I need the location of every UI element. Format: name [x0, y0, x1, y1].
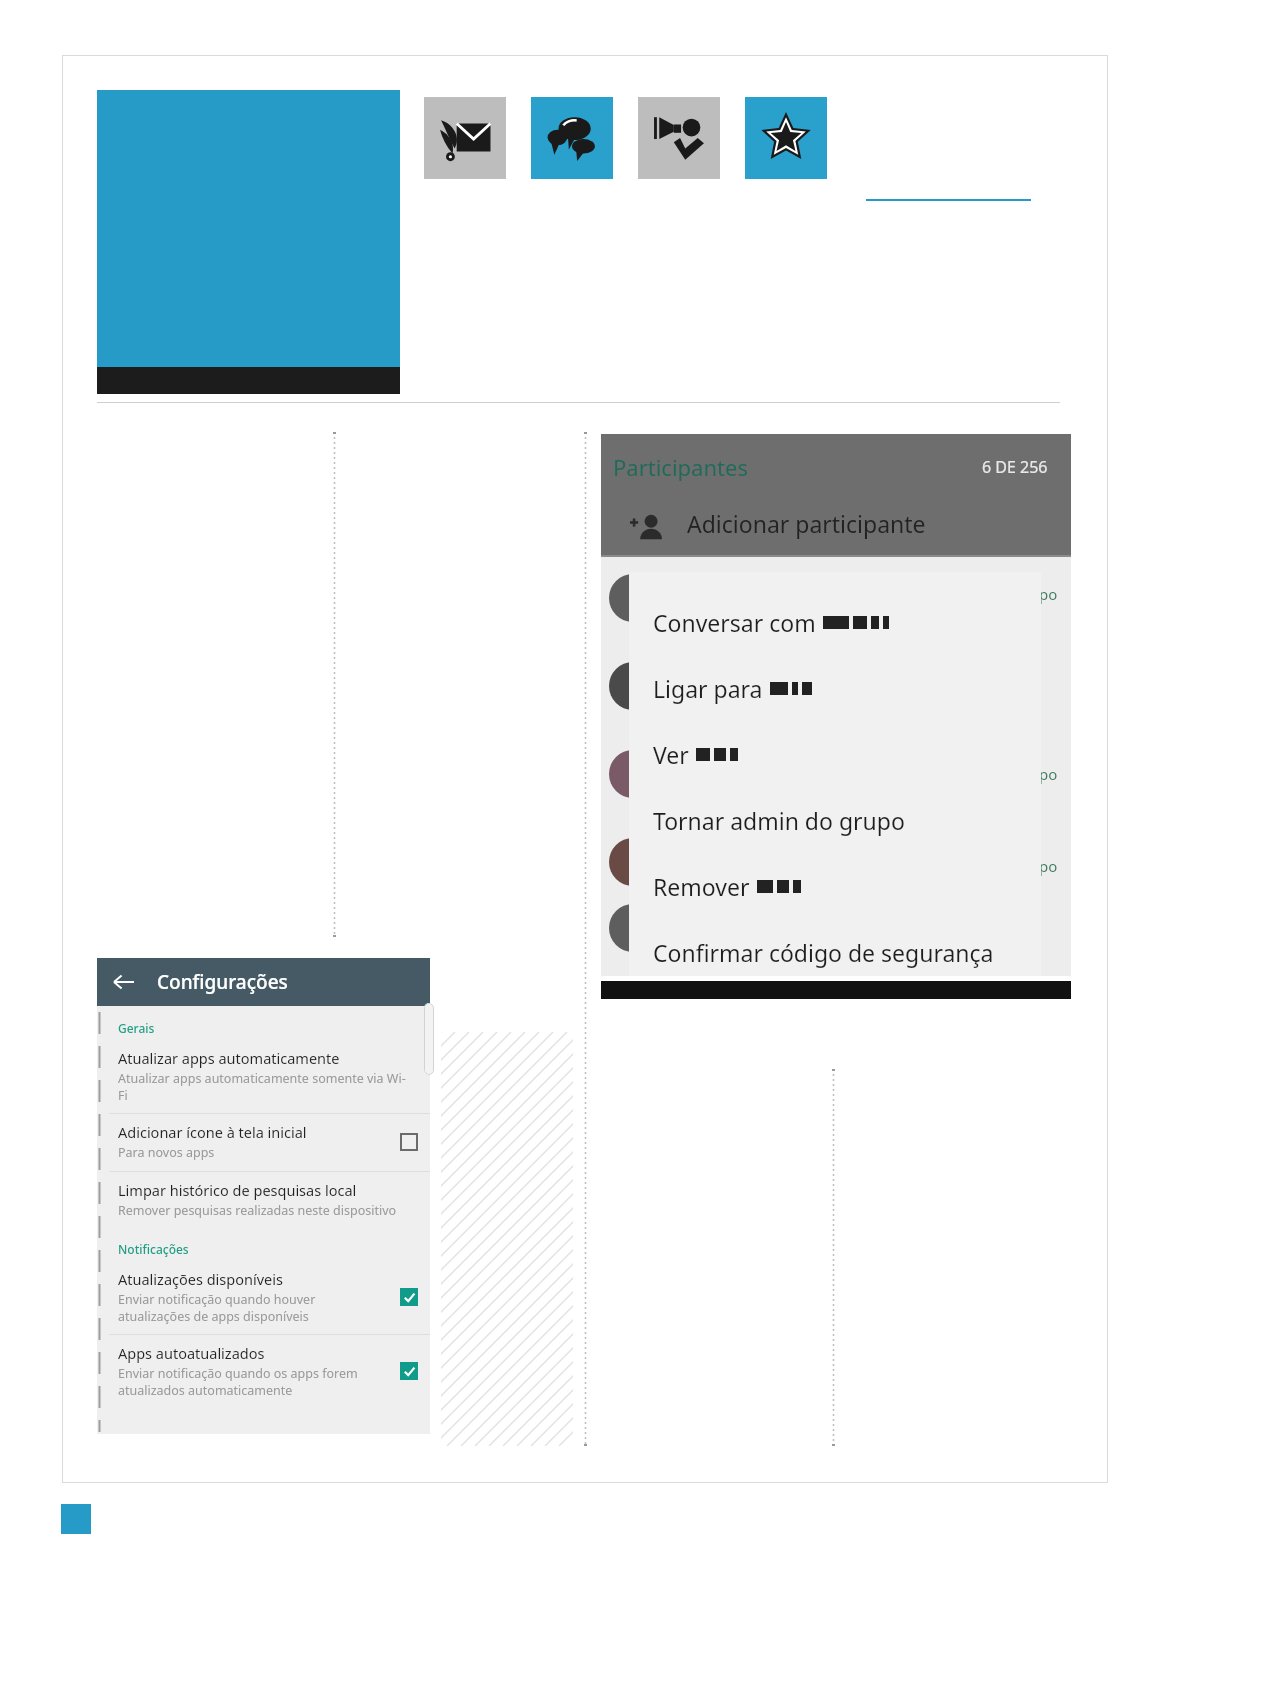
staticText: Gerais	[118, 1020, 155, 1036]
staticText: Enviar notificação quando houver atualiz…	[118, 1291, 316, 1324]
button[interactable]: Ligar para	[629, 660, 1041, 716]
staticText: Atualizar apps automaticamente somente v…	[118, 1070, 406, 1103]
button[interactable]: Confirmar código de segurança	[629, 924, 1041, 980]
button[interactable]: Chat	[531, 97, 613, 179]
staticText: 6 DE 256	[982, 456, 1048, 478]
staticText: Limpar histórico de pesquisas local	[118, 1180, 357, 1200]
staticText: Adicionar ícone à tela inicial	[118, 1122, 307, 1142]
button[interactable]: Apps autoatualizados	[97, 1335, 430, 1408]
staticText: Confirmar código de segurança	[653, 937, 994, 968]
staticText: Para novos apps	[118, 1144, 215, 1161]
staticText: Conversar com	[653, 607, 816, 638]
staticText: Apps autoatualizados	[118, 1343, 265, 1363]
button[interactable]: Announce	[638, 97, 720, 179]
button[interactable]: Adicionar ícone à tela inicial	[97, 1114, 430, 1171]
staticText: po	[1039, 856, 1058, 876]
staticText: Configurações	[157, 969, 288, 995]
button[interactable]: Favorite	[745, 97, 827, 179]
button[interactable]: Atualizar apps automaticamente	[97, 1040, 430, 1113]
staticText: Enviar notificação quando os apps forem …	[118, 1365, 358, 1398]
button[interactable]: Limpar histórico de pesquisas local	[97, 1172, 430, 1229]
staticText: Participantes	[613, 452, 748, 482]
button[interactable]: Adicionar participante	[619, 500, 675, 556]
staticText: Tornar admin do grupo	[653, 805, 905, 836]
staticText: po	[1039, 584, 1058, 604]
button[interactable]: Ver	[629, 726, 1041, 782]
button[interactable]: Remover	[629, 858, 1041, 914]
staticText: Remover pesquisas realizadas neste dispo…	[118, 1202, 397, 1219]
button[interactable]: Atualizações disponíveis	[97, 1261, 430, 1334]
staticText: Ver	[653, 739, 689, 770]
button[interactable]: Email	[424, 97, 506, 179]
staticText: Adicionar participante	[687, 508, 926, 539]
button[interactable]: Back	[107, 965, 141, 999]
button[interactable]: Conversar com	[629, 594, 1041, 650]
staticText: Atualizações disponíveis	[118, 1269, 283, 1289]
button[interactable]: Tornar admin do grupo	[629, 792, 1041, 848]
staticText: Notificações	[118, 1241, 189, 1257]
staticText: Remover	[653, 871, 750, 902]
staticText: po	[1039, 764, 1058, 784]
staticText: Atualizar apps automaticamente	[118, 1048, 340, 1068]
staticText: Ligar para	[653, 673, 763, 704]
